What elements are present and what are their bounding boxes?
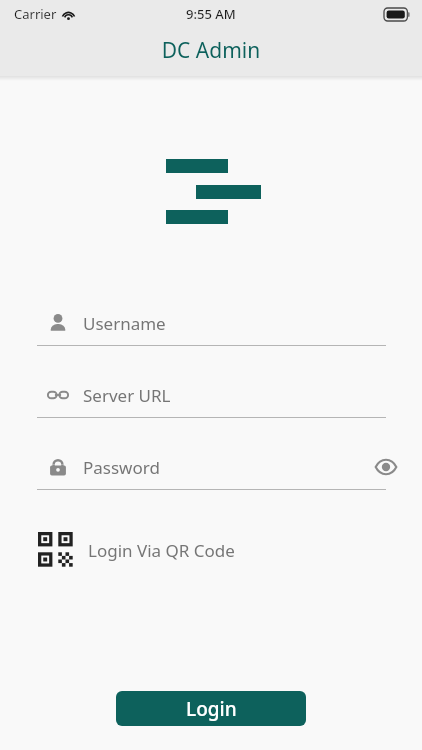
staticText: 9:55 AM [186,5,236,23]
button[interactable]: Login [116,691,306,726]
staticText: Username [83,312,166,335]
staticText: Carrier [14,5,57,23]
button[interactable]: Show password [369,450,403,484]
staticText: Server URL [83,384,171,407]
button[interactable]: Login Via QR Code [0,528,422,572]
button[interactable]: Username [0,301,422,346]
staticText: DC Admin [0,36,422,65]
staticText: Password [83,456,160,479]
staticText: Login Via QR Code [88,539,235,562]
staticText: Login [186,696,237,722]
button[interactable]: Password [0,445,422,490]
button[interactable]: Server URL [0,373,422,418]
